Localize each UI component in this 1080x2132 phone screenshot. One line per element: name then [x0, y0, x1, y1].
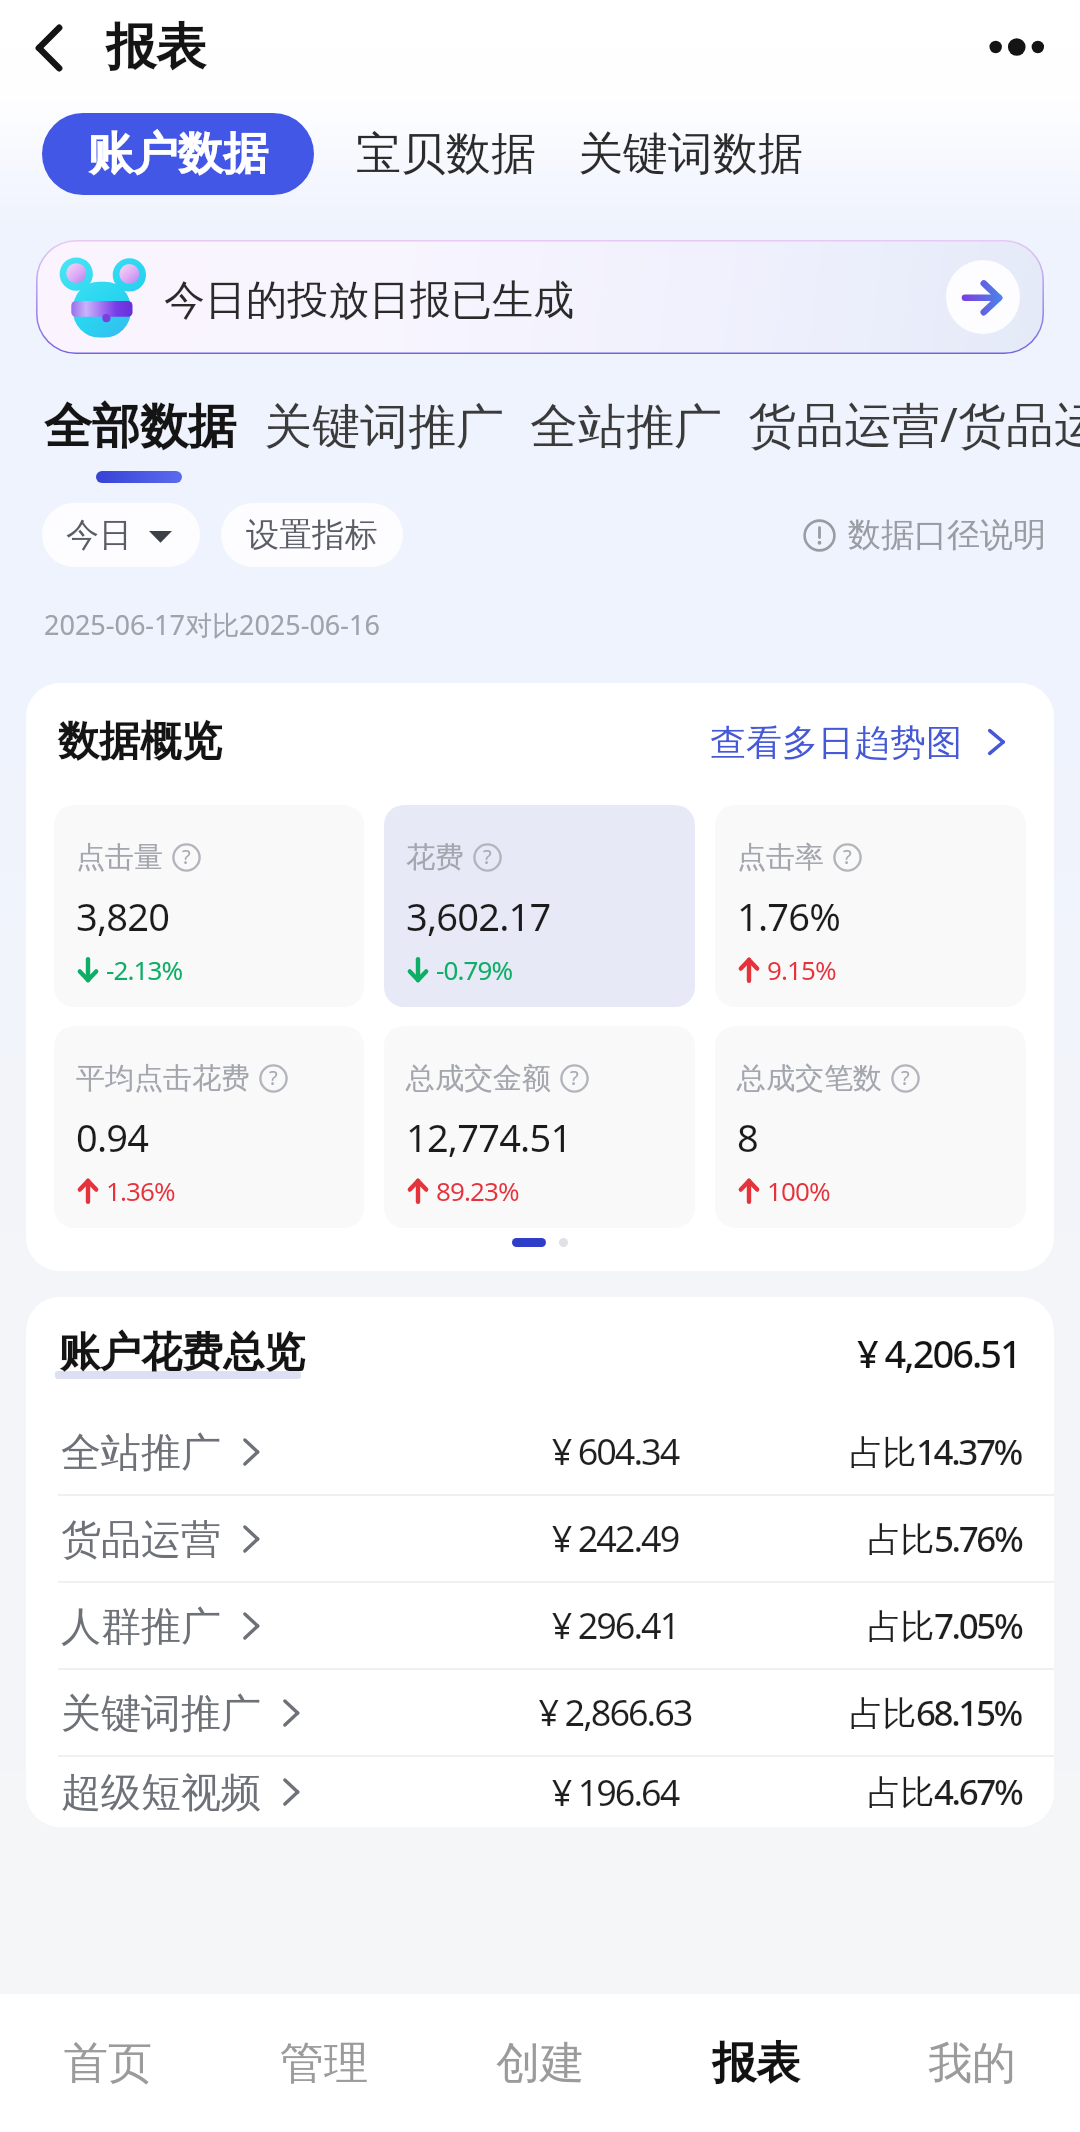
staticText: 3,602.17: [406, 890, 551, 942]
staticText: 总成交笔数: [737, 1060, 882, 1097]
button[interactable]: 全站推广: [26, 1409, 1054, 1494]
staticText: 1.76%: [737, 890, 840, 942]
staticText: 全站推广: [530, 397, 722, 457]
staticText: 我的: [928, 2036, 1016, 2091]
button[interactable]: 今日: [42, 503, 200, 567]
staticText: 首页: [64, 2036, 152, 2091]
button[interactable]: 人群推广: [26, 1583, 1054, 1668]
staticText: 账户花费总览: [59, 1327, 305, 1379]
staticText: 100%: [767, 1173, 830, 1208]
staticText: -2.13%: [106, 952, 183, 987]
staticText: 0.94: [76, 1111, 149, 1163]
staticText: 账户数据: [88, 126, 268, 183]
staticText: 数据概览: [58, 716, 222, 768]
staticText: 关键词数据: [578, 126, 803, 183]
button[interactable]: 总成交笔数: [715, 1026, 1026, 1228]
staticText: 3,820: [76, 890, 170, 942]
staticText: 报表: [712, 2036, 800, 2091]
button[interactable]: 账户数据: [42, 113, 314, 195]
button[interactable]: Back: [14, 12, 86, 84]
staticText: 全站推广: [61, 1427, 221, 1477]
staticText: 7.05%: [934, 1602, 1022, 1650]
button[interactable]: 总成交金额: [384, 1026, 695, 1228]
button[interactable]: 设置指标: [221, 503, 403, 567]
staticText: ¥ 4,206.51: [857, 1327, 1020, 1379]
staticText: ?: [570, 1064, 579, 1091]
staticText: ¥ 2,866.63: [435, 1688, 795, 1737]
staticText: 超级短视频: [61, 1767, 261, 1817]
staticText: 点击量: [76, 839, 163, 876]
staticText: 货品运营/货品运营: [748, 391, 1080, 457]
staticText: 创建: [496, 2036, 584, 2091]
staticText: ¥ 242.49: [435, 1514, 795, 1563]
staticText: 5.76%: [934, 1515, 1022, 1563]
staticText: 报表: [106, 16, 206, 79]
staticText: 8: [737, 1111, 758, 1163]
staticText: 14.37%: [916, 1428, 1022, 1476]
staticText: 占比: [868, 1518, 934, 1561]
staticText: 关键词推广: [61, 1688, 261, 1738]
staticText: ?: [483, 843, 492, 870]
staticText: 占比: [868, 1605, 934, 1648]
button[interactable]: 首页: [0, 1994, 216, 2132]
button[interactable]: 数据口径说明: [799, 503, 1050, 567]
staticText: 人群推广: [61, 1601, 221, 1651]
staticText: ¥ 196.64: [435, 1768, 795, 1817]
staticText: 1.36%: [106, 1173, 175, 1208]
staticText: 关键词推广: [264, 397, 504, 457]
button[interactable]: 查看多日趋势图: [710, 710, 1010, 774]
button[interactable]: 管理: [216, 1994, 432, 2132]
staticText: 89.23%: [436, 1173, 519, 1208]
button[interactable]: 关键词数据: [578, 113, 823, 195]
staticText: 占比: [850, 1431, 916, 1474]
staticText: 点击率: [737, 839, 824, 876]
staticText: 2025-06-17对比2025-06-16: [44, 606, 380, 643]
staticText: 4.67%: [934, 1768, 1022, 1816]
staticText: 宝贝数据: [356, 126, 536, 183]
button[interactable]: 关键词推广: [26, 1670, 1054, 1755]
staticText: 占比: [850, 1692, 916, 1735]
button[interactable]: 宝贝数据: [314, 113, 578, 195]
button[interactable]: More options: [973, 3, 1063, 93]
staticText: ¥ 604.34: [435, 1427, 795, 1476]
staticText: 今日: [66, 514, 132, 556]
button[interactable]: 超级短视频: [26, 1757, 1054, 1827]
staticText: 货品运营: [61, 1514, 221, 1564]
button[interactable]: 花费: [384, 805, 695, 1007]
button[interactable]: 我的: [864, 1994, 1080, 2132]
staticText: ?: [843, 843, 852, 870]
button[interactable]: 报表: [648, 1994, 864, 2132]
staticText: 全部数据: [44, 397, 236, 457]
staticText: ?: [269, 1064, 278, 1091]
staticText: 平均点击花费: [76, 1060, 250, 1097]
button[interactable]: 今日的投放日报已生成: [36, 240, 1044, 354]
staticText: 12,774.51: [406, 1111, 572, 1163]
staticText: 数据口径说明: [848, 514, 1046, 556]
button[interactable]: 货品运营: [26, 1496, 1054, 1581]
staticText: ?: [182, 843, 191, 870]
staticText: 9.15%: [767, 952, 836, 987]
button[interactable]: 点击率: [715, 805, 1026, 1007]
staticText: 总成交金额: [406, 1060, 551, 1097]
staticText: 查看多日趋势图: [710, 720, 962, 765]
staticText: 68.15%: [916, 1689, 1022, 1737]
staticText: ¥ 296.41: [435, 1601, 795, 1650]
staticText: -0.79%: [436, 952, 513, 987]
staticText: 花费: [406, 839, 464, 876]
button[interactable]: 创建: [432, 1994, 648, 2132]
button[interactable]: 点击量: [54, 805, 364, 1007]
staticText: 管理: [280, 2036, 368, 2091]
staticText: ?: [901, 1064, 910, 1091]
staticText: 设置指标: [246, 514, 378, 556]
button[interactable]: 平均点击花费: [54, 1026, 364, 1228]
staticText: 今日的投放日报已生成: [164, 275, 574, 327]
staticText: 占比: [868, 1771, 934, 1814]
button[interactable]: Open daily report: [946, 260, 1020, 334]
